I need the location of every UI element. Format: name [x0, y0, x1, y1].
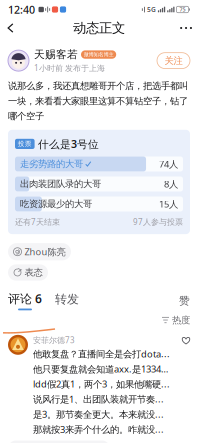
- staticText: 热度: [172, 314, 190, 326]
- staticText: 12:40: [8, 2, 35, 17]
- staticText: 那就按3来弄个什么的。咋就没啥门: [33, 423, 172, 435]
- staticText: 关注: [164, 55, 182, 66]
- staticText: 一块，来看看大家眼里这算不算钻空子，钻了: [8, 95, 188, 107]
- button[interactable]: Zhou陈亮: [8, 243, 71, 260]
- staticText: 投票: [18, 140, 32, 148]
- button[interactable]: 评论一下吧: [8, 440, 110, 443]
- staticText: 说风行是1、出团队装就开节奏的才: [33, 393, 172, 405]
- button[interactable]: 安菲尔德73 profile picture: [8, 335, 28, 355]
- staticText: 说那么多，我还真想雕哥开个店，把选手都叫: [8, 80, 188, 92]
- staticText: 评论 6: [8, 291, 42, 306]
- button[interactable]: 走劣势路的大哥: [15, 156, 183, 171]
- button[interactable]: 吃资源最少的大哥: [15, 196, 183, 211]
- button[interactable]: 天赐客若 profile picture: [8, 50, 29, 71]
- staticText: 出肉装团队录的大哥: [20, 178, 101, 190]
- button[interactable]: 转发: [55, 292, 79, 310]
- staticText: 他敢复盘？直播间全是会打dota的。: [33, 347, 172, 360]
- staticText: 什么是3号位: [38, 137, 99, 151]
- button[interactable]: Back: [0, 19, 32, 37]
- staticText: 哪个空子: [8, 110, 44, 122]
- button[interactable]: 表态: [8, 264, 48, 281]
- staticText: 吃资源最少的大哥: [20, 198, 92, 210]
- staticText: 赞: [179, 294, 190, 307]
- staticText: Zhou陈亮: [24, 245, 65, 258]
- button[interactable]: 赞: [179, 294, 190, 310]
- staticText: 表态: [24, 267, 42, 278]
- staticText: ldd假2真1，两个3，如果他嘴硬要要: [33, 378, 172, 390]
- staticText: 动态正文: [73, 20, 125, 36]
- staticText: 安菲尔德73: [33, 335, 75, 345]
- staticText: 74人: [159, 158, 178, 170]
- staticText: 转发: [55, 292, 79, 306]
- staticText: 97人参与投票: [133, 216, 183, 227]
- button[interactable]: More options: [166, 19, 198, 37]
- button[interactable]: 评论 6: [8, 291, 42, 310]
- button[interactable]: Like comment: [182, 335, 190, 344]
- staticText: 天赐客若: [34, 48, 78, 61]
- staticText: 还有7天结束: [15, 216, 60, 227]
- staticText: 5G: [147, 5, 156, 14]
- button[interactable]: 热度: [162, 314, 190, 326]
- staticText: 1小时前 发布于上海: [34, 63, 105, 73]
- staticText: 8人: [164, 178, 178, 190]
- staticText: 75: [179, 6, 185, 13]
- staticText: 他只要复盘就会知道axx.是13345。: [33, 363, 172, 375]
- staticText: 是3。那节奏全更大。本来就没啥事，: [33, 408, 172, 420]
- button[interactable]: 关注: [157, 53, 190, 69]
- staticText: 走劣势路的大哥: [20, 158, 83, 170]
- staticText: 微博知名博主: [84, 51, 114, 58]
- staticText: 15人: [159, 198, 178, 210]
- button[interactable]: 出肉装团队录的大哥: [15, 176, 183, 191]
